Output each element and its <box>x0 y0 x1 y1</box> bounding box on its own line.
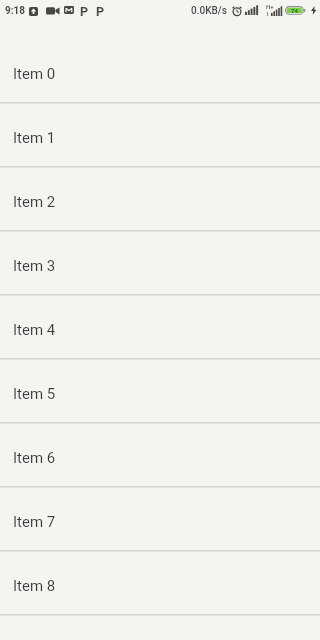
button[interactable]: Item 6 <box>0 424 320 488</box>
staticText: 0.0KB/s <box>191 5 227 17</box>
staticText: Item 2 <box>13 193 56 211</box>
staticText: Item 8 <box>13 577 56 595</box>
staticText: Item 6 <box>13 449 56 467</box>
button[interactable]: Item 4 <box>0 296 320 360</box>
staticText: Item 5 <box>13 385 56 403</box>
button[interactable]: Item 2 <box>0 168 320 232</box>
staticText: Item 4 <box>13 321 56 339</box>
staticText: 74 <box>291 7 298 14</box>
button[interactable]: Item 1 <box>0 104 320 168</box>
button[interactable]: Item 7 <box>0 488 320 552</box>
staticText: 9:18 <box>5 5 26 17</box>
staticText: Item 3 <box>13 257 56 275</box>
staticText: Item 1 <box>13 129 56 147</box>
button[interactable]: Item 3 <box>0 232 320 296</box>
button[interactable]: Item 8 <box>0 552 320 616</box>
staticText: Item 0 <box>13 65 56 83</box>
button[interactable]: Item 0 <box>0 40 320 104</box>
staticText: Item 7 <box>13 513 56 531</box>
staticText: P <box>80 4 89 19</box>
staticText: P <box>96 4 105 19</box>
button[interactable]: Item 5 <box>0 360 320 424</box>
staticText: H+ <box>266 3 274 10</box>
